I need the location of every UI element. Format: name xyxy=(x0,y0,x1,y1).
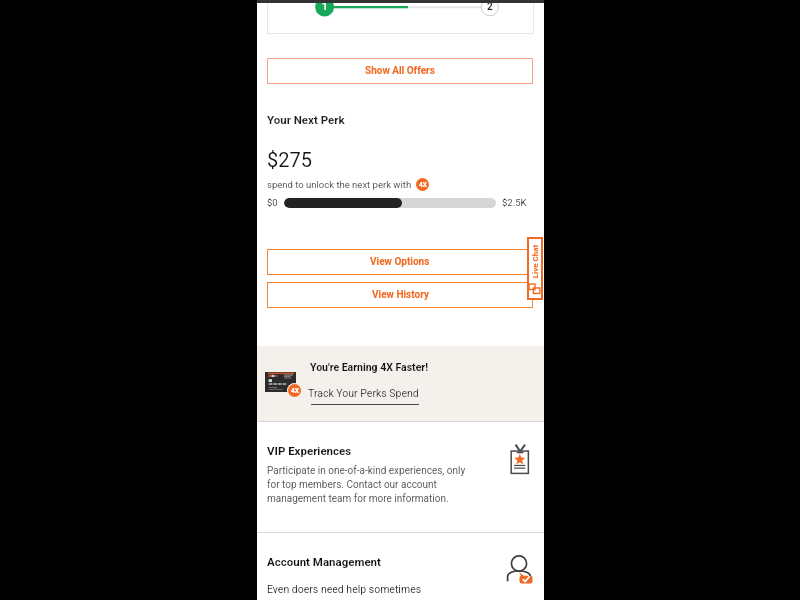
staticText: $2.5K xyxy=(502,197,527,208)
staticText: 2 xyxy=(487,1,493,13)
staticText: Show All Offers xyxy=(365,65,435,77)
staticText: VIP Experiences xyxy=(267,444,352,457)
button[interactable]: Track Your Perks Spend xyxy=(311,384,419,408)
staticText: Even doers need help sometimes xyxy=(267,583,422,595)
button[interactable]: Show All Offers xyxy=(267,58,533,84)
staticText: 4X xyxy=(291,387,299,395)
staticText: View History xyxy=(372,289,429,301)
staticText: 4X xyxy=(419,181,427,189)
button[interactable]: Live Chat xyxy=(527,237,543,300)
staticText: You're Earning 4X Faster! xyxy=(310,361,429,373)
staticText: spend to unlock the next perk with xyxy=(267,179,412,190)
staticText: Your Next Perk xyxy=(267,113,345,126)
staticText: Live Chat xyxy=(530,237,539,285)
staticText: Account Management xyxy=(267,555,381,568)
button[interactable]: View Options xyxy=(267,249,533,275)
button[interactable]: VIP Experiences xyxy=(257,421,544,532)
staticText: 1 xyxy=(322,1,328,13)
staticText: View Options xyxy=(370,256,430,268)
staticText: Participate in one-of-a-kind experiences… xyxy=(267,465,467,505)
staticText: $0 xyxy=(267,197,278,208)
button[interactable]: Account Management xyxy=(257,532,544,600)
staticText: Track Your Perks Spend xyxy=(308,387,428,399)
staticText: $275 xyxy=(267,148,312,171)
button[interactable]: View History xyxy=(267,282,533,308)
